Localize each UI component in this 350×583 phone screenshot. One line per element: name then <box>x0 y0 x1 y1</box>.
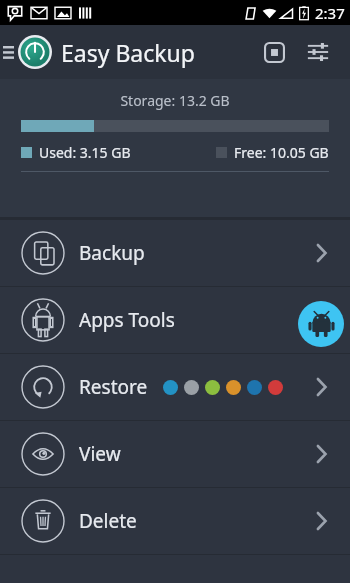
button[interactable]: Backup <box>0 220 350 286</box>
staticText: 2:37 <box>315 3 345 23</box>
staticText: Storage: 13.2 GB <box>0 91 350 110</box>
staticText: Free: 10.05 GB <box>234 143 329 162</box>
button[interactable]: Settings <box>296 30 340 74</box>
staticText: Delete <box>79 508 137 534</box>
button[interactable]: Restore <box>0 354 350 420</box>
staticText: Apps Tools <box>79 307 175 333</box>
staticText: Used: 3.15 GB <box>39 143 131 162</box>
button[interactable]: View <box>0 421 350 487</box>
button[interactable]: Menu <box>0 32 16 72</box>
staticText: Restore <box>79 374 148 400</box>
button[interactable]: Apps <box>298 301 344 347</box>
staticText: Backup <box>79 240 145 266</box>
staticText: View <box>79 441 121 467</box>
staticText: Easy Backup <box>61 37 195 68</box>
button[interactable]: Stop <box>252 30 296 74</box>
button[interactable]: Delete <box>0 488 350 554</box>
button[interactable]: Apps Tools <box>0 287 350 353</box>
